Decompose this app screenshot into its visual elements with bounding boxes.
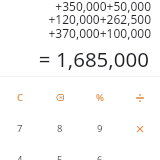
staticText: 7 [17, 122, 23, 135]
staticText: 9 [97, 122, 103, 135]
button[interactable]: 9 [80, 113, 120, 144]
button[interactable]: 6 [80, 144, 120, 160]
button[interactable]: Multiply [120, 113, 160, 144]
staticText: % [96, 91, 104, 104]
button[interactable]: C [0, 82, 40, 113]
button[interactable]: 5 [40, 144, 80, 160]
staticText: 8 [57, 122, 63, 135]
button[interactable]: 4 [0, 144, 40, 160]
staticText: 6 [97, 153, 103, 160]
button[interactable]: 7 [0, 113, 40, 144]
staticText: C [17, 91, 24, 104]
button[interactable]: 8 [40, 113, 80, 144]
staticText: = 1,685,000 [0, 45, 149, 73]
staticText: 5 [57, 153, 63, 160]
button[interactable]: % [80, 82, 120, 113]
button[interactable]: Divide [120, 82, 160, 113]
staticText: +350,000+50,000 [0, 0, 151, 14]
staticText: +120,000+262,500 [0, 11, 151, 27]
staticText: 4 [17, 153, 23, 160]
staticText: +370,000+100,000 [0, 25, 151, 41]
button[interactable]: Backspace [40, 82, 80, 113]
